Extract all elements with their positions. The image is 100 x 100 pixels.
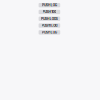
- staticText: PUSH 100: [43, 10, 56, 14]
- staticText: PUSH LOG: [42, 3, 57, 7]
- staticText: PUSH LOG: [42, 30, 57, 34]
- staticText: PUSH1 LOG: [42, 24, 57, 27]
- staticText: PUSH LOGS: [41, 17, 58, 21]
